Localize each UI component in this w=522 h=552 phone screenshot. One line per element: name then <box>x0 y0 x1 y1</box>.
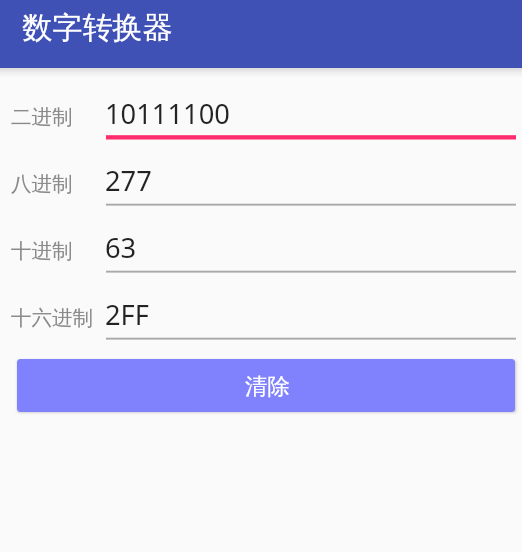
button[interactable]: 十六进制 <box>0 303 522 370</box>
staticText: 二进制 <box>11 104 73 130</box>
staticText: 清除 <box>245 372 290 400</box>
staticText: 十六进制 <box>11 305 93 331</box>
staticText: 2FF <box>105 296 149 333</box>
button[interactable]: 二进制 <box>0 102 522 169</box>
staticText: 十进制 <box>11 238 73 264</box>
staticText: 八进制 <box>11 171 73 197</box>
staticText: 10111100 <box>105 95 230 132</box>
staticText: 63 <box>105 229 137 266</box>
button[interactable]: 十进制 <box>0 236 522 303</box>
button[interactable]: 八进制 <box>0 169 522 236</box>
staticText: 数字转换器 <box>22 9 173 47</box>
button[interactable]: 清除 <box>17 359 515 412</box>
staticText: 277 <box>105 162 152 199</box>
